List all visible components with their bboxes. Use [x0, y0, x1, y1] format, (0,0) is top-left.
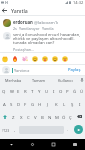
button[interactable]: Kullanıcı: [52, 76, 78, 84]
button[interactable]: G: [29, 97, 36, 110]
staticText: 2s: [13, 26, 17, 31]
button[interactable]: E: [15, 84, 22, 97]
button[interactable]: Send: [71, 123, 85, 136]
staticText: Z: [12, 114, 15, 120]
button[interactable]: Q: [0, 84, 8, 97]
staticText: @labcxam'lı: [34, 19, 58, 25]
staticText: Yanıtınız: [14, 68, 30, 73]
button[interactable]: Ş: [68, 97, 76, 110]
button[interactable]: Ü: [78, 84, 85, 97]
staticText: Ç: [69, 114, 72, 120]
button[interactable]: T: [29, 84, 36, 97]
button[interactable]: X: [17, 110, 25, 123]
button[interactable]: Emoji reaction: [30, 53, 40, 64]
button[interactable]: Emoji reaction: [10, 53, 20, 64]
staticText: K: [55, 101, 58, 107]
button[interactable]: S: [8, 97, 15, 110]
staticText: N: [48, 114, 52, 120]
button[interactable]: I: [76, 97, 84, 110]
button[interactable]: O: [57, 84, 64, 97]
staticText: erdoruan: [13, 19, 33, 25]
button[interactable]: Back: [0, 139, 22, 150]
staticText: Ü: [80, 88, 84, 94]
button[interactable]: N: [46, 110, 53, 123]
button[interactable]: Paylaş: [67, 66, 82, 74]
staticText: .: [67, 127, 69, 133]
staticText: S: [10, 101, 13, 107]
button[interactable]: W: [8, 84, 15, 97]
button[interactable]: Back: [0, 6, 9, 15]
button[interactable]: Emoji reaction: [50, 53, 60, 64]
staticText: Yanıtlanıyor: [19, 26, 40, 31]
staticText: L: [63, 101, 66, 107]
button[interactable]: Merhaba: [0, 76, 26, 84]
staticText: Ğ: [73, 88, 77, 94]
staticText: T: [31, 88, 34, 94]
button[interactable]: V: [32, 110, 39, 123]
staticText: R: [24, 88, 27, 94]
button[interactable]: B: [39, 110, 46, 123]
staticText: U: [45, 88, 49, 94]
button[interactable]: Comma: [11, 123, 19, 136]
button[interactable]: H: [36, 97, 44, 110]
staticText: Tamam: [32, 78, 46, 83]
button[interactable]: Y: [36, 84, 43, 97]
button[interactable]: Voice input: [78, 76, 85, 84]
button[interactable]: F: [22, 97, 29, 110]
button[interactable]: Ö: [60, 110, 67, 123]
button[interactable]: Recent apps: [43, 139, 64, 150]
button[interactable]: I: [50, 84, 57, 97]
button[interactable]: U: [43, 84, 50, 97]
staticText: V: [34, 114, 37, 120]
button[interactable]: Emoji reaction: [60, 53, 70, 64]
button[interactable]: Tamam: [26, 76, 52, 84]
button[interactable]: Z: [9, 110, 17, 123]
button[interactable]: Emoji reaction: [0, 53, 10, 64]
staticText: Merhaba: [5, 78, 22, 83]
staticText: Yanıtla: [42, 26, 54, 31]
button[interactable]: P: [64, 84, 71, 97]
staticText: G: [31, 101, 35, 107]
staticText: A: [3, 101, 6, 107]
staticText: E: [17, 88, 20, 94]
button[interactable]: ?123: [0, 123, 11, 136]
staticText: P: [66, 88, 69, 94]
button[interactable]: C: [25, 110, 32, 123]
button[interactable]: Shift: [0, 110, 9, 123]
staticText: Ö: [62, 114, 66, 120]
staticText: I: [79, 101, 81, 107]
staticText: Paylaş: [68, 67, 81, 73]
staticText: 14:32: [73, 0, 84, 5]
staticText: J: [47, 101, 49, 107]
button[interactable]: D: [15, 97, 22, 110]
staticText: M: [55, 114, 59, 120]
button[interactable]: Emoji reaction: [20, 53, 30, 64]
button[interactable]: Ç: [67, 110, 74, 123]
staticText: seni,a ilonushood ercurl hasandan, eltir…: [13, 32, 82, 45]
button[interactable]: Switch keyboard: [64, 139, 85, 150]
button[interactable]: K: [52, 97, 60, 110]
staticText: O: [59, 88, 63, 94]
button[interactable]: L: [60, 97, 68, 110]
staticText: C: [27, 114, 30, 120]
staticText: I: [53, 88, 55, 94]
staticText: Postaşhan...: [13, 47, 34, 52]
staticText: ?123: [2, 128, 10, 132]
staticText: Ş: [71, 101, 74, 107]
staticText: F: [24, 101, 27, 107]
staticText: X: [20, 114, 23, 120]
button[interactable]: J: [44, 97, 52, 110]
button[interactable]: M: [53, 110, 60, 123]
staticText: ,: [14, 127, 16, 133]
button[interactable]: Backspace: [74, 110, 85, 123]
button[interactable]: Ğ: [71, 84, 78, 97]
button[interactable]: Emoji reaction: [40, 53, 50, 64]
button[interactable]: R: [22, 84, 29, 97]
staticText: H: [38, 101, 42, 107]
staticText: Q: [2, 88, 6, 94]
button[interactable]: Home: [22, 139, 43, 150]
button[interactable]: A: [1, 97, 8, 110]
staticText: Yanıtla: [11, 7, 28, 14]
